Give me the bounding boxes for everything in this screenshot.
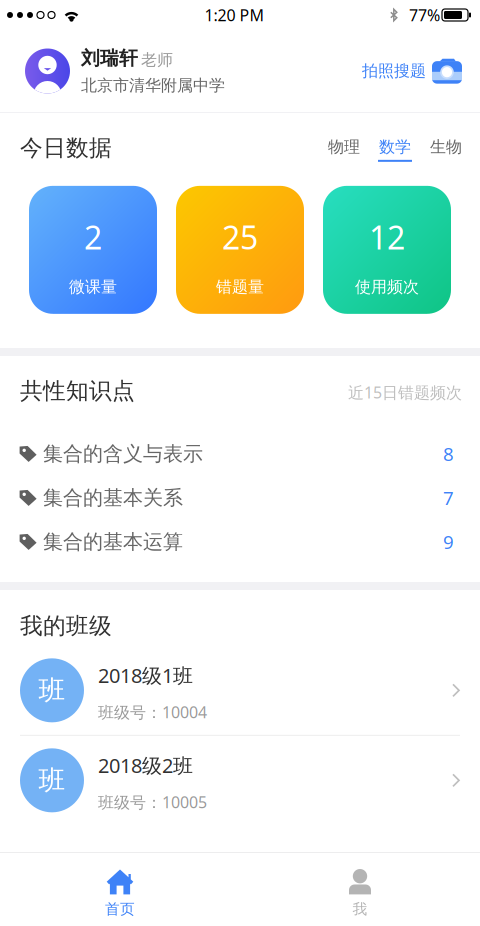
staticText: 77% [409, 4, 440, 26]
staticText: 25 [222, 216, 258, 258]
staticText: 12 [369, 216, 405, 258]
staticText: 生物 [430, 137, 462, 157]
staticText: 集合的基本运算 [43, 530, 183, 554]
staticText: 班级号：10004 [98, 701, 207, 723]
staticText: 2018级1班 [98, 662, 193, 688]
button[interactable]: 班 [0, 646, 480, 735]
button[interactable]: 12 [323, 186, 451, 314]
staticText: 今日数据 [20, 134, 112, 162]
staticText: 班 [38, 764, 65, 797]
staticText: 班 [38, 674, 65, 707]
button[interactable]: 首页 [0, 853, 240, 926]
staticText: 刘瑞轩 [81, 47, 138, 70]
staticText: 1:20 PM [204, 4, 264, 26]
button[interactable]: 生物 [430, 137, 462, 162]
staticText: 7 [443, 485, 454, 510]
staticText: 2018级2班 [98, 752, 193, 778]
staticText: 物理 [328, 137, 360, 157]
button[interactable]: 集合的基本关系 [0, 476, 480, 520]
staticText: 错题量 [216, 277, 264, 297]
staticText: 我的班级 [20, 612, 112, 640]
staticText: 微课量 [69, 277, 117, 297]
staticText: 数学 [379, 137, 411, 157]
staticText: 8 [443, 441, 454, 466]
button[interactable]: 25 [176, 186, 304, 314]
button[interactable]: 数学 [378, 137, 412, 162]
button[interactable]: 拍照搜题 [362, 58, 462, 84]
button[interactable]: 物理 [328, 137, 360, 162]
button[interactable]: 集合的含义与表示 [0, 432, 480, 476]
staticText: 近15日错题频次 [348, 382, 462, 403]
staticText: 班级号：10005 [98, 791, 207, 813]
button[interactable]: 班 [0, 736, 480, 825]
button[interactable]: 集合的基本运算 [0, 520, 480, 564]
staticText: 拍照搜题 [362, 61, 426, 81]
staticText: 共性知识点 [20, 377, 135, 405]
staticText: 2 [84, 216, 102, 258]
staticText: 首页 [105, 900, 135, 918]
staticText: 集合的含义与表示 [43, 442, 203, 466]
button[interactable]: 我 [240, 853, 480, 926]
staticText: 使用频次 [355, 277, 419, 297]
staticText: 集合的基本关系 [43, 486, 183, 510]
button[interactable]: 2 [29, 186, 157, 314]
staticText: 我 [352, 900, 367, 918]
staticText: 北京市清华附属中学 [81, 76, 225, 95]
staticText: 老师 [141, 50, 173, 70]
staticText: 9 [443, 529, 454, 554]
